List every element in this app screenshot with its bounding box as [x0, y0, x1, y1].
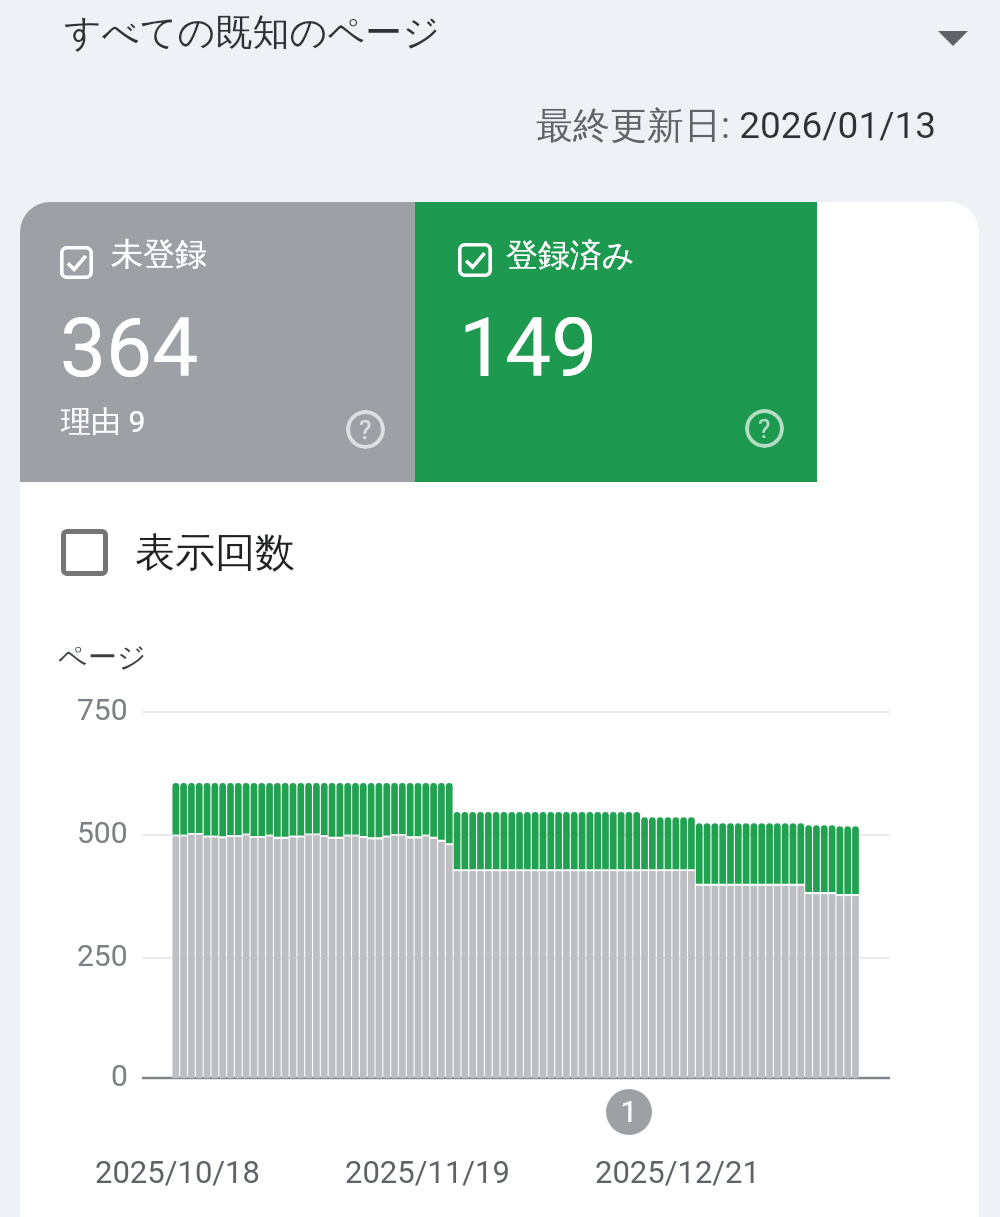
button[interactable]: すべての既知のページ	[0, 4, 1000, 60]
staticText: ?	[359, 415, 372, 445]
staticText: 2025/12/21	[595, 1154, 760, 1190]
button[interactable]: 表示回数	[61, 517, 315, 587]
staticText: 表示回数	[135, 527, 295, 577]
button[interactable]: 未登録	[20, 202, 415, 482]
staticText: 登録済み	[506, 235, 635, 275]
staticText: ページ	[58, 639, 147, 676]
staticText: 500	[77, 815, 128, 850]
staticText: 0	[111, 1058, 128, 1093]
button[interactable]: ?	[745, 409, 784, 448]
button[interactable]: ?	[346, 410, 385, 449]
staticText: 250	[77, 938, 128, 973]
staticText: 149	[459, 300, 598, 396]
button[interactable]: 登録済み	[415, 202, 817, 482]
staticText: 364	[60, 300, 199, 396]
staticText: 2025/10/18	[95, 1154, 260, 1190]
staticText: 理由 9	[61, 403, 146, 441]
staticText: すべての既知のページ	[64, 9, 441, 56]
staticText: 750	[77, 692, 128, 727]
staticText: 最終更新日: 2026/01/13	[536, 102, 937, 149]
staticText: ?	[758, 414, 771, 444]
staticText: 未登録	[111, 234, 207, 274]
staticText: 1	[614, 1094, 644, 1129]
staticText: 2025/11/19	[345, 1154, 510, 1190]
